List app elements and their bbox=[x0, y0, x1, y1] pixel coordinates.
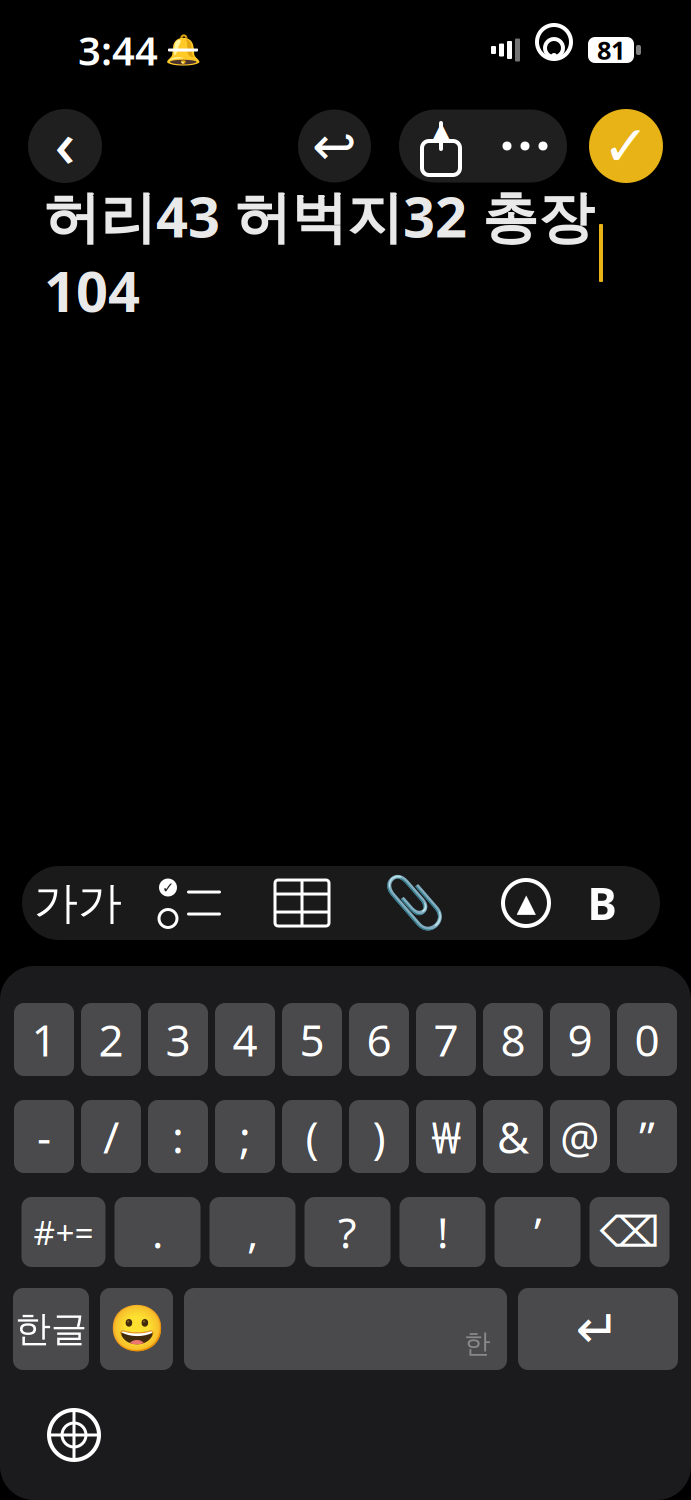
staticText: ⌫ bbox=[599, 1208, 659, 1256]
staticText: & bbox=[497, 1107, 529, 1166]
button[interactable]: ) bbox=[349, 1100, 409, 1173]
staticText: 0 bbox=[634, 1010, 659, 1069]
button[interactable]: Delete bbox=[589, 1197, 669, 1267]
staticText: : bbox=[172, 1107, 184, 1166]
button[interactable]: #+= bbox=[21, 1197, 105, 1267]
button[interactable]: 4 bbox=[215, 1003, 275, 1076]
staticText: ” bbox=[639, 1107, 655, 1166]
staticText: ; bbox=[239, 1107, 251, 1166]
staticText: / bbox=[103, 1107, 119, 1166]
staticText: ₩ bbox=[431, 1107, 460, 1166]
button[interactable]: : bbox=[148, 1100, 208, 1173]
button[interactable]: Back bbox=[28, 109, 102, 183]
staticText: ↵ bbox=[575, 1299, 620, 1359]
staticText: ( bbox=[305, 1107, 318, 1166]
button[interactable]: 3 bbox=[148, 1003, 208, 1076]
staticText: @ bbox=[560, 1107, 600, 1166]
button[interactable]: ! bbox=[399, 1197, 485, 1267]
button[interactable]: ₩ bbox=[416, 1100, 476, 1173]
staticText: 3 bbox=[165, 1010, 190, 1069]
staticText: 한 bbox=[464, 1327, 491, 1360]
button[interactable]: Done bbox=[589, 109, 663, 183]
button[interactable]: 8 bbox=[483, 1003, 543, 1076]
button[interactable]: Return bbox=[518, 1288, 678, 1370]
button[interactable]: More options bbox=[483, 109, 567, 182]
staticText: ) bbox=[372, 1107, 385, 1166]
button[interactable]: 1 bbox=[14, 1003, 74, 1076]
button[interactable]: Emoji bbox=[100, 1288, 173, 1370]
button[interactable]: 가가 bbox=[22, 866, 134, 940]
button[interactable]: Checklist bbox=[134, 866, 246, 940]
staticText: . bbox=[152, 1204, 163, 1260]
staticText: 7 bbox=[433, 1010, 458, 1069]
button[interactable]: 7 bbox=[416, 1003, 476, 1076]
staticText: ! bbox=[437, 1204, 448, 1260]
button[interactable]: @ bbox=[550, 1100, 610, 1173]
staticText: ? bbox=[338, 1204, 357, 1260]
button[interactable]: 9 bbox=[550, 1003, 610, 1076]
staticText: #+= bbox=[33, 1210, 93, 1254]
staticText: ▲ bbox=[433, 117, 449, 141]
button[interactable]: , bbox=[209, 1197, 295, 1267]
button[interactable]: Undo bbox=[298, 109, 371, 182]
staticText: 9 bbox=[567, 1010, 592, 1069]
button[interactable]: 0 bbox=[617, 1003, 677, 1076]
staticText: 8 bbox=[500, 1010, 525, 1069]
staticText: ▲ bbox=[516, 889, 535, 917]
staticText: 📎 bbox=[382, 874, 445, 932]
button[interactable]: Table bbox=[246, 866, 358, 940]
button[interactable]: Switch keyboard bbox=[34, 1395, 114, 1475]
staticText: 1 bbox=[31, 1010, 56, 1069]
staticText: 가가 bbox=[34, 876, 122, 930]
button[interactable]: 2 bbox=[81, 1003, 141, 1076]
button[interactable]: 5 bbox=[282, 1003, 342, 1076]
staticText: 3:44 bbox=[78, 23, 158, 76]
staticText: 한글 bbox=[15, 1307, 87, 1351]
button[interactable]: ” bbox=[617, 1100, 677, 1173]
button[interactable]: - bbox=[14, 1100, 74, 1173]
button[interactable]: Share bbox=[399, 109, 483, 182]
staticText: - bbox=[37, 1107, 51, 1166]
staticText: 허리43 허벅지32 총장104 bbox=[44, 179, 594, 327]
button[interactable]: Space bbox=[184, 1288, 507, 1370]
button[interactable]: Bold bbox=[582, 866, 622, 940]
button[interactable]: . bbox=[114, 1197, 200, 1267]
staticText: 🔔 bbox=[164, 33, 201, 67]
button[interactable]: / bbox=[81, 1100, 141, 1173]
button[interactable]: ( bbox=[282, 1100, 342, 1173]
staticText: ‹ bbox=[54, 100, 75, 185]
staticText: 4 bbox=[232, 1010, 257, 1069]
button[interactable]: ’ bbox=[494, 1197, 580, 1267]
staticText: ↩ bbox=[312, 116, 357, 176]
staticText: 2 bbox=[98, 1010, 123, 1069]
staticText: ✓ bbox=[602, 114, 649, 178]
staticText: 81 bbox=[597, 33, 625, 67]
staticText: 😀 bbox=[108, 1303, 164, 1355]
button[interactable]: Attach file bbox=[358, 866, 470, 940]
staticText: 5 bbox=[299, 1010, 324, 1069]
staticText: ✓ bbox=[162, 879, 174, 896]
button[interactable]: 6 bbox=[349, 1003, 409, 1076]
button[interactable]: 한글 bbox=[13, 1288, 89, 1370]
staticText: , bbox=[247, 1204, 258, 1260]
button[interactable]: ? bbox=[304, 1197, 390, 1267]
button[interactable]: & bbox=[483, 1100, 543, 1173]
staticText: 6 bbox=[366, 1010, 391, 1069]
staticText: ’ bbox=[534, 1204, 541, 1260]
staticText: B bbox=[587, 874, 616, 932]
button[interactable]: ; bbox=[215, 1100, 275, 1173]
button[interactable]: Markup bbox=[470, 866, 582, 940]
